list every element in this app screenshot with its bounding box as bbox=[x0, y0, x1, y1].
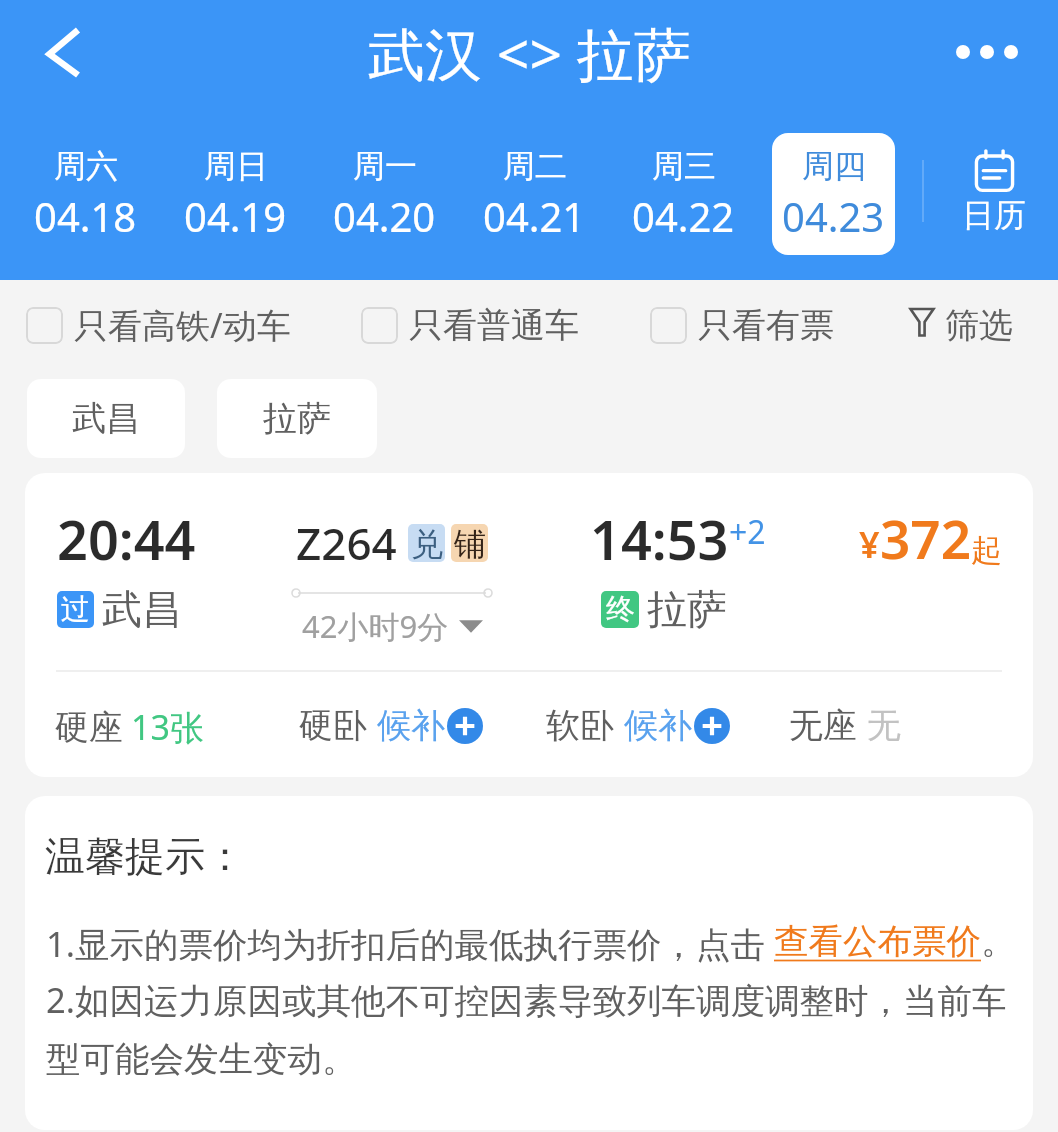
button[interactable]: 周四 bbox=[772, 133, 895, 255]
staticText: 42小时9分 bbox=[302, 605, 449, 647]
staticText: ¥ bbox=[859, 520, 880, 569]
button[interactable]: 软卧 bbox=[546, 704, 730, 747]
staticText: 查看公布票价 bbox=[774, 920, 981, 963]
staticText: 终 bbox=[606, 591, 635, 628]
button[interactable]: 只看高铁/动车 bbox=[26, 302, 291, 348]
button[interactable]: 20:44 bbox=[25, 473, 1033, 777]
staticText: 20:44 bbox=[57, 502, 196, 576]
staticText: 兑 bbox=[411, 524, 443, 562]
button[interactable]: 周二 bbox=[459, 133, 609, 255]
staticText: 周二 bbox=[503, 146, 567, 186]
staticText: 过 bbox=[61, 591, 90, 628]
staticText: 。 bbox=[981, 920, 1016, 963]
staticText: 只看高铁/动车 bbox=[74, 302, 291, 348]
staticText: 硬座 bbox=[55, 706, 123, 749]
staticText: 候补 bbox=[377, 704, 445, 747]
button[interactable]: 只看有票 bbox=[650, 304, 834, 347]
button[interactable]: 周六 bbox=[10, 133, 160, 255]
button[interactable]: 硬座 bbox=[55, 704, 204, 750]
staticText: 04.23 bbox=[782, 189, 885, 243]
staticText: 周日 bbox=[204, 146, 268, 186]
button[interactable]: 只看普通车 bbox=[361, 304, 579, 347]
staticText: 周六 bbox=[54, 146, 118, 186]
button[interactable]: 拉萨 bbox=[217, 379, 377, 458]
staticText: 无 bbox=[867, 704, 901, 747]
button[interactable]: 周日 bbox=[160, 133, 310, 255]
button[interactable]: 周三 bbox=[608, 133, 758, 255]
staticText: 温馨提示： bbox=[45, 831, 245, 881]
staticText: 04.21 bbox=[483, 189, 586, 243]
staticText: 周一 bbox=[353, 146, 417, 186]
staticText: 武昌 bbox=[102, 584, 182, 634]
button[interactable]: More options bbox=[938, 8, 1036, 98]
staticText: 拉萨 bbox=[647, 584, 727, 634]
staticText: 筛选 bbox=[945, 304, 1013, 347]
staticText: 只看有票 bbox=[698, 304, 834, 347]
staticText: 372 bbox=[880, 502, 971, 574]
staticText: 铺 bbox=[454, 524, 486, 562]
button[interactable]: 周一 bbox=[309, 133, 459, 255]
button[interactable]: 无座 bbox=[789, 704, 901, 747]
staticText: +2 bbox=[729, 510, 766, 554]
button[interactable]: 日历 bbox=[930, 132, 1058, 253]
button[interactable]: Back bbox=[8, 8, 108, 98]
staticText: Z264 bbox=[296, 513, 397, 573]
button[interactable]: 查看公布票价 bbox=[774, 920, 981, 963]
staticText: 04.18 bbox=[34, 189, 137, 243]
staticText: 起 bbox=[971, 531, 1002, 570]
staticText: 武汉 <> 拉萨 bbox=[368, 14, 691, 92]
staticText: 2.如因运力原因或其他不可控因素导致列车调度调整时，当前车型可能会发生变动。 bbox=[46, 976, 1021, 1082]
staticText: 只看普通车 bbox=[409, 304, 579, 347]
button[interactable]: 硬卧 bbox=[299, 704, 483, 747]
staticText: 周三 bbox=[652, 146, 716, 186]
staticText: 周四 bbox=[802, 146, 866, 186]
staticText: 13张 bbox=[131, 704, 204, 750]
staticText: 硬卧 bbox=[299, 704, 367, 747]
button[interactable]: 武昌 bbox=[27, 379, 185, 458]
staticText: 04.22 bbox=[632, 189, 735, 243]
staticText: 04.20 bbox=[333, 189, 436, 243]
staticText: 软卧 bbox=[546, 704, 614, 747]
staticText: 候补 bbox=[624, 704, 692, 747]
staticText: 1.显示的票价均为折扣后的最低执行票价，点击 bbox=[46, 920, 774, 967]
staticText: 14:53 bbox=[590, 502, 729, 576]
button[interactable]: 筛选 bbox=[909, 304, 1013, 347]
staticText: 武昌 bbox=[72, 397, 140, 440]
staticText: 拉萨 bbox=[263, 397, 331, 440]
staticText: 04.19 bbox=[184, 189, 287, 243]
staticText: 日历 bbox=[962, 195, 1026, 235]
staticText: 无座 bbox=[789, 704, 857, 747]
